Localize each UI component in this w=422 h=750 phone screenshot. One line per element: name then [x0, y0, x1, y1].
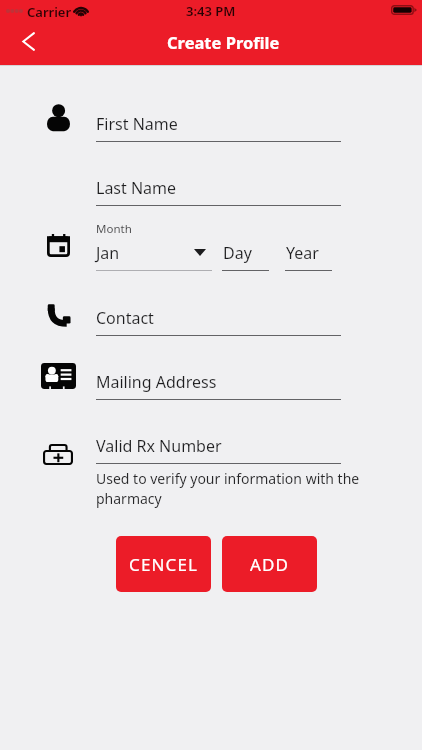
staticText: ADD	[250, 553, 290, 576]
button[interactable]: Mailing Address	[96, 362, 341, 399]
button[interactable]: ADD	[222, 536, 317, 592]
button[interactable]: Day	[222, 240, 269, 271]
staticText: Day	[223, 242, 252, 264]
staticText: Month	[96, 221, 132, 237]
button[interactable]: Back	[6, 21, 51, 62]
staticText: 3:43 PM	[186, 2, 236, 20]
button[interactable]: First Name	[96, 104, 341, 141]
staticText: Used to verify your information with the…	[96, 469, 360, 509]
staticText: Last Name	[96, 177, 177, 199]
button[interactable]: Valid Rx Number	[96, 426, 341, 463]
button[interactable]: Year	[285, 240, 332, 271]
staticText: Valid Rx Number	[96, 435, 222, 457]
staticText: Mailing Address	[96, 371, 217, 393]
staticText: CENCEL	[129, 553, 199, 576]
button[interactable]: Jan	[96, 240, 212, 271]
staticText: Create Profile	[167, 31, 280, 53]
button[interactable]: Last Name	[96, 168, 341, 205]
staticText: First Name	[96, 113, 178, 135]
staticText: Contact	[96, 307, 154, 329]
staticText: Carrier	[27, 3, 72, 21]
staticText: Year	[286, 242, 319, 264]
button[interactable]: Contact	[96, 298, 341, 335]
staticText: Jan	[96, 242, 120, 264]
button[interactable]: CENCEL	[116, 536, 211, 592]
